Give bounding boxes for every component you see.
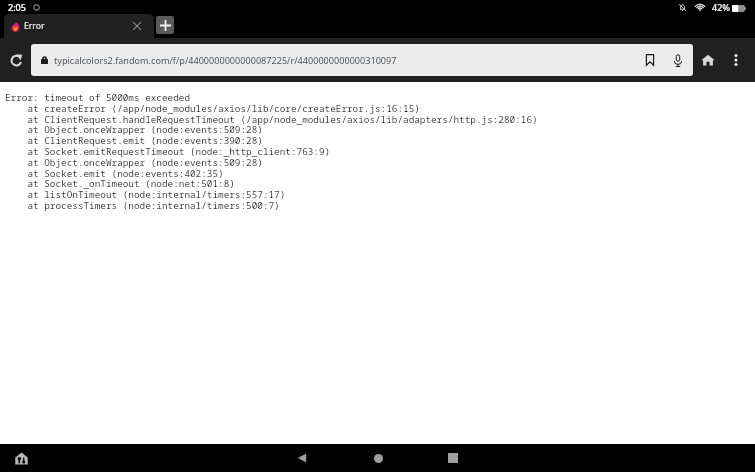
button[interactable]: Home xyxy=(696,49,719,71)
staticText: at Socket.emit (node:events:402:35) xyxy=(5,167,224,180)
staticText: at Object.onceWrapper (node:events:509:2… xyxy=(5,156,263,169)
button[interactable]: Error xyxy=(4,14,154,38)
button[interactable]: Reload xyxy=(4,49,30,71)
button[interactable]: Close tab xyxy=(130,19,144,33)
staticText: at processTimers (node:internal/timers:5… xyxy=(5,199,280,212)
staticText: Error: timeout of 5000ms exceeded xyxy=(5,91,191,104)
staticText: at listOnTimeout (node:internal/timers:5… xyxy=(5,188,286,201)
button[interactable]: More options xyxy=(725,49,746,71)
button[interactable]: Back xyxy=(274,444,330,472)
staticText: typicalcolors2.fandom.com/f/p/4400000000… xyxy=(54,54,640,66)
staticText: 42% xyxy=(712,1,730,13)
button[interactable]: Home xyxy=(350,444,406,472)
staticText: Error xyxy=(24,20,130,32)
staticText: at Socket.emitRequestTimeout (node:_http… xyxy=(5,145,331,158)
staticText: at Object.onceWrapper (node:events:509:2… xyxy=(5,123,263,136)
staticText: at Socket._onTimeout (node:net:501:8) xyxy=(5,177,235,190)
staticText: at ClientRequest.handleRequestTimeout (/… xyxy=(5,113,538,126)
button[interactable]: Bookmark xyxy=(640,50,660,70)
button[interactable]: typicalcolors2.fandom.com/f/p/4400000000… xyxy=(31,44,693,76)
button[interactable]: Smart home xyxy=(13,449,29,467)
button[interactable]: New tab xyxy=(156,16,174,34)
button[interactable]: Recent apps xyxy=(425,444,481,472)
staticText: at ClientRequest.emit (node:events:390:2… xyxy=(5,134,263,147)
button[interactable]: Voice search xyxy=(668,50,688,70)
staticText: 2:05 xyxy=(8,1,26,13)
staticText: at createError (/app/node_modules/axios/… xyxy=(5,102,420,115)
